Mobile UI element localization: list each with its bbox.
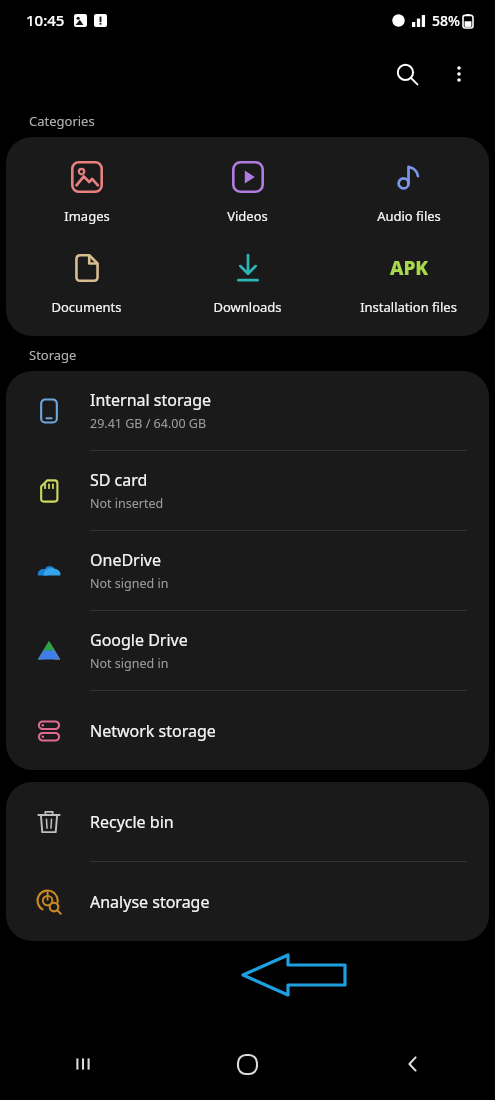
staticText: Analyse storage [90, 891, 210, 913]
button[interactable]: Back [330, 1028, 495, 1100]
button[interactable]: Network storage [6, 691, 489, 770]
staticText: Network storage [90, 720, 216, 742]
staticText: Audio files [377, 207, 441, 225]
staticText: OneDrive [90, 549, 161, 571]
button[interactable]: Audio files [328, 153, 489, 229]
button[interactable]: OneDrive [6, 531, 489, 610]
staticText: Categories [29, 112, 95, 130]
button[interactable]: Recents [0, 1028, 165, 1100]
button[interactable]: Home [165, 1028, 330, 1100]
staticText: APK [390, 255, 429, 281]
button[interactable]: More options [433, 48, 485, 100]
staticText: Recycle bin [90, 811, 174, 833]
button[interactable]: Recycle bin [6, 782, 489, 861]
staticText: Not signed in [90, 655, 169, 672]
staticText: Downloads [213, 298, 282, 316]
staticText: Google Drive [90, 629, 188, 651]
staticText: Not signed in [90, 575, 169, 592]
staticText: Storage [29, 346, 77, 364]
button[interactable]: Videos [167, 153, 328, 229]
button[interactable]: Internal storage [6, 371, 489, 450]
staticText: 58% [432, 11, 460, 30]
button[interactable]: Google Drive [6, 611, 489, 690]
button[interactable]: Analyse storage [6, 862, 489, 941]
staticText: Images [64, 207, 110, 225]
staticText: 10:45 [26, 10, 65, 30]
button[interactable]: Images [6, 153, 167, 229]
staticText: 29.41 GB / 64.00 GB [90, 415, 207, 432]
button[interactable]: APK [328, 244, 489, 320]
staticText: Installation files [360, 298, 457, 316]
button[interactable]: Search [381, 48, 433, 100]
staticText: Documents [51, 298, 122, 316]
staticText: Internal storage [90, 389, 212, 411]
button[interactable]: SD card [6, 451, 489, 530]
button[interactable]: Documents [6, 244, 167, 320]
staticText: SD card [90, 469, 148, 491]
staticText: Not inserted [90, 495, 164, 512]
staticText: Videos [227, 207, 268, 225]
button[interactable]: Downloads [167, 244, 328, 320]
